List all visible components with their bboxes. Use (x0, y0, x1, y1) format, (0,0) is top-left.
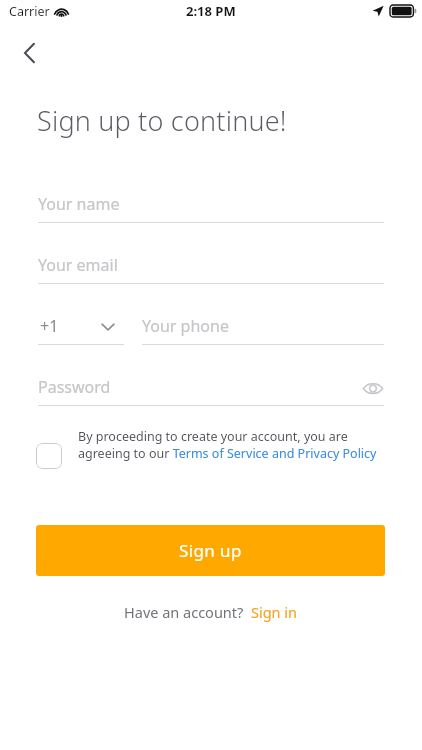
staticText: Your email (38, 254, 118, 276)
button[interactable]: Have an account? (124, 602, 298, 622)
staticText: Sign up (179, 539, 242, 562)
button[interactable]: Agree to terms (36, 428, 386, 462)
button[interactable]: Sign up (36, 525, 385, 576)
staticText: Your name (38, 193, 120, 215)
staticText: Carrier (9, 3, 50, 20)
button[interactable]: Show password (360, 375, 386, 401)
staticText: By proceeding to create your account, yo… (78, 428, 386, 462)
staticText: Sign in (251, 602, 298, 622)
button[interactable]: +1 (38, 312, 124, 345)
button[interactable]: Password (38, 373, 384, 406)
staticText: +1 (40, 315, 59, 337)
staticText: 2:18 PM (186, 2, 236, 20)
staticText: Password (38, 376, 111, 398)
other: Agree to terms (36, 443, 62, 469)
staticText: Your phone (142, 315, 229, 337)
button[interactable]: Your email (38, 251, 384, 284)
button[interactable]: Your name (38, 190, 384, 223)
button[interactable]: Your phone (142, 312, 384, 345)
button[interactable]: Back (10, 34, 50, 72)
staticText: Have an account? (124, 602, 244, 622)
staticText: Sign up to continue! (37, 102, 287, 139)
